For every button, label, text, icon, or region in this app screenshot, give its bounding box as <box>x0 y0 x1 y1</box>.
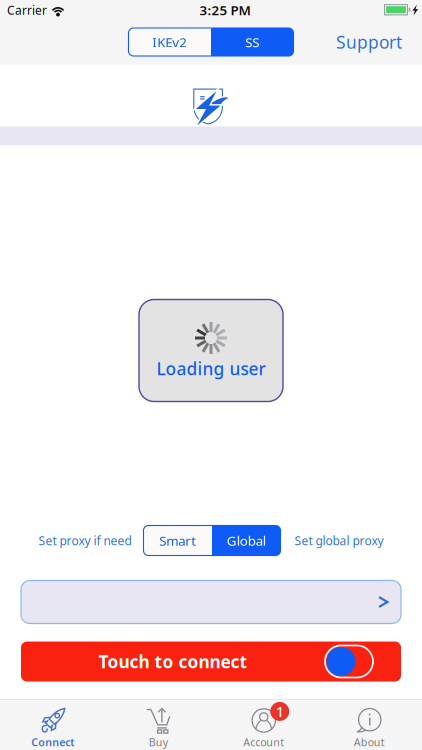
button[interactable]: Support <box>326 22 412 61</box>
button[interactable]: Smart <box>143 525 212 555</box>
staticText: Support <box>336 30 402 53</box>
staticText: Smart <box>159 532 196 549</box>
staticText: Touch to connect <box>98 650 247 673</box>
staticText: SS <box>245 33 259 51</box>
staticText: Set proxy if need <box>38 532 131 548</box>
staticText: Carrier <box>7 2 47 18</box>
staticText: Global <box>227 532 266 549</box>
button[interactable]: About <box>316 701 422 749</box>
button[interactable]: IKEv2 <box>128 28 211 56</box>
staticText: About <box>354 735 385 749</box>
button[interactable]: Loading user <box>139 299 283 401</box>
button[interactable] <box>0 580 422 623</box>
button[interactable]: Buy <box>105 701 211 749</box>
staticText: IKEv2 <box>152 33 187 51</box>
button[interactable]: Global <box>212 525 280 555</box>
button[interactable]: Connect <box>0 701 105 749</box>
button[interactable]: SS <box>211 28 293 56</box>
staticText: 1 <box>276 702 284 721</box>
button[interactable]: Touch to connect <box>0 641 422 681</box>
staticText: Loading user <box>156 357 265 380</box>
staticText: Account <box>243 735 284 749</box>
button[interactable]: 1 <box>211 701 316 749</box>
staticText: Buy <box>149 735 168 749</box>
staticText: Connect <box>31 735 74 749</box>
staticText: 3:25 PM <box>199 1 250 19</box>
staticText: Set global proxy <box>294 532 383 548</box>
